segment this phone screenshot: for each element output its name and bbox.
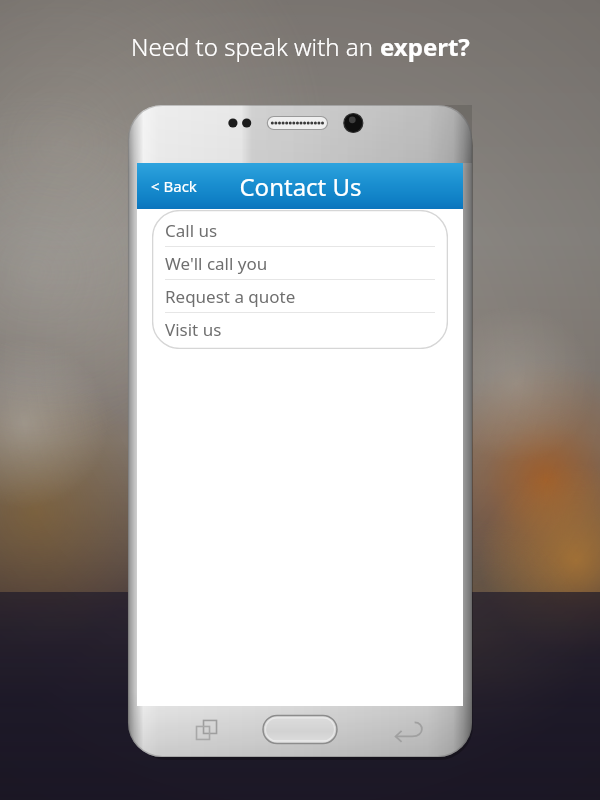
staticText: Contact Us: [239, 170, 362, 203]
staticText: < Back: [151, 176, 197, 196]
staticText: We'll call you: [165, 252, 268, 275]
staticText: Request a quote: [165, 285, 296, 308]
button[interactable]: Back: [357, 706, 472, 757]
staticText: Visit us: [165, 318, 222, 341]
staticText: Call us: [165, 219, 218, 242]
staticText: expert?: [380, 30, 470, 63]
button[interactable]: Recent apps: [128, 706, 242, 757]
button[interactable]: Request a quote: [152, 280, 448, 312]
button[interactable]: Home: [242, 706, 357, 757]
button[interactable]: Visit us: [152, 313, 448, 345]
button[interactable]: We'll call you: [152, 247, 448, 279]
button[interactable]: Call us: [152, 214, 448, 246]
button[interactable]: < Back: [143, 170, 205, 202]
staticText: Need to speak with an: [131, 30, 380, 63]
